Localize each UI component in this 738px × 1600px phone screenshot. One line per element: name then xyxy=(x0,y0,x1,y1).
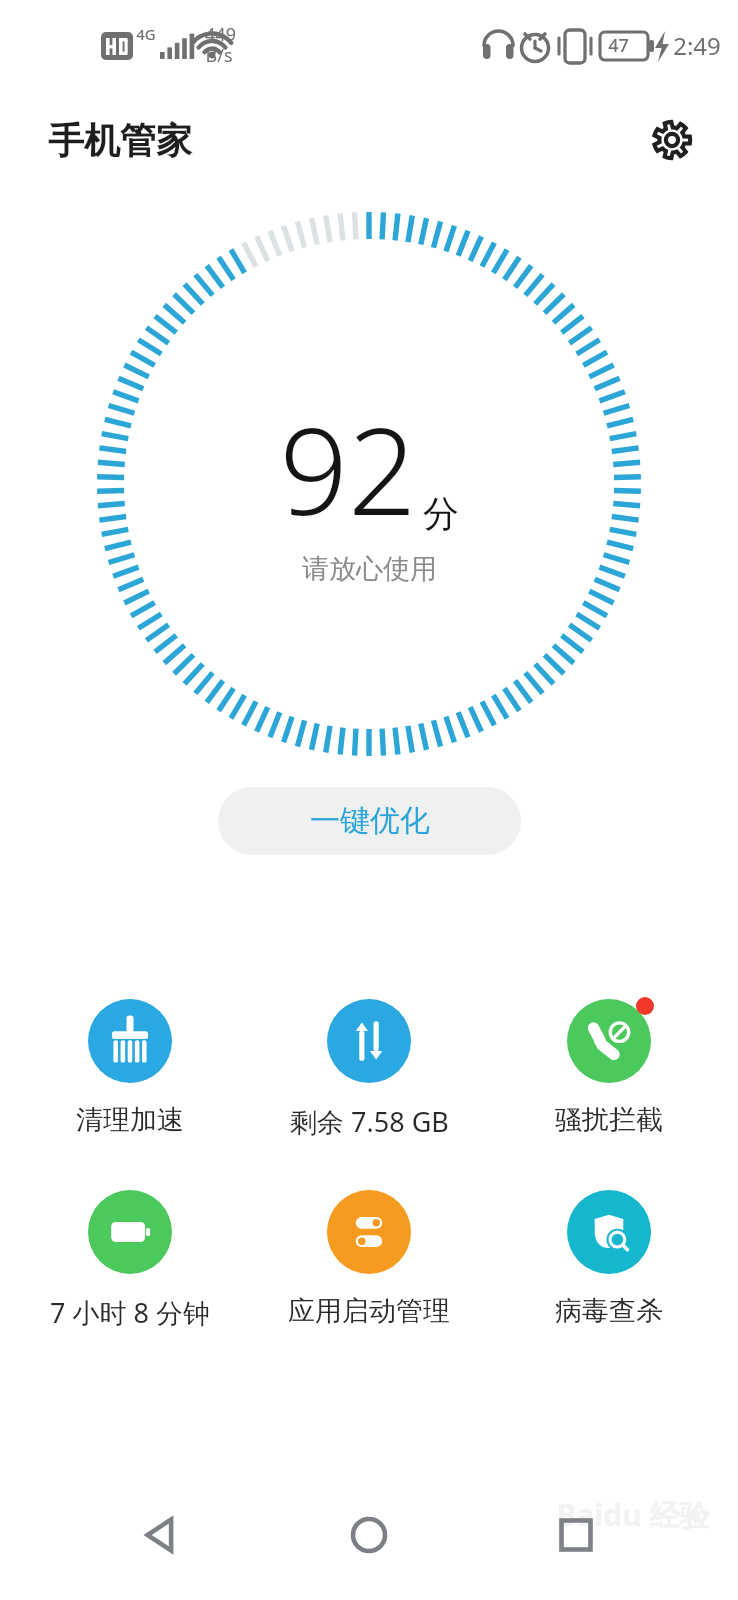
staticText: 剩余 7.58 GB xyxy=(290,1103,449,1140)
button[interactable]: 病毒查杀 xyxy=(499,1184,719,1328)
staticText: 4G xyxy=(136,24,156,44)
button[interactable]: 清理加速 xyxy=(20,993,240,1137)
button[interactable]: 应用启动管理 xyxy=(259,1184,479,1328)
staticText: 骚扰拦截 xyxy=(555,1103,663,1137)
staticText: B/s xyxy=(205,43,233,68)
staticText: 一键优化 xyxy=(310,802,430,840)
button[interactable]: 7 小时 8 分钟 xyxy=(20,1184,240,1331)
button[interactable]: 骚扰拦截 xyxy=(499,993,719,1137)
staticText: 分 xyxy=(423,491,459,536)
staticText: 47 xyxy=(608,33,629,58)
staticText: 病毒查杀 xyxy=(555,1294,663,1328)
button[interactable]: Back xyxy=(117,1490,207,1580)
staticText: 应用启动管理 xyxy=(288,1294,450,1328)
button[interactable]: Home xyxy=(324,1490,414,1580)
staticText: 7 小时 8 分钟 xyxy=(50,1294,210,1331)
button[interactable]: 剩余 7.58 GB xyxy=(259,993,479,1140)
staticText: Baidu 经验 xyxy=(556,1494,710,1535)
staticText: 手机管家 xyxy=(48,118,192,163)
staticText: 2:49 xyxy=(673,29,721,62)
button[interactable]: Recents xyxy=(531,1490,621,1580)
button[interactable]: Settings xyxy=(638,106,706,174)
staticText: 请放心使用 xyxy=(302,552,437,586)
staticText: 清理加速 xyxy=(76,1103,184,1137)
button[interactable]: 一键优化 xyxy=(218,787,521,855)
staticText: 92 xyxy=(279,387,417,550)
staticText: 449 xyxy=(205,22,236,47)
